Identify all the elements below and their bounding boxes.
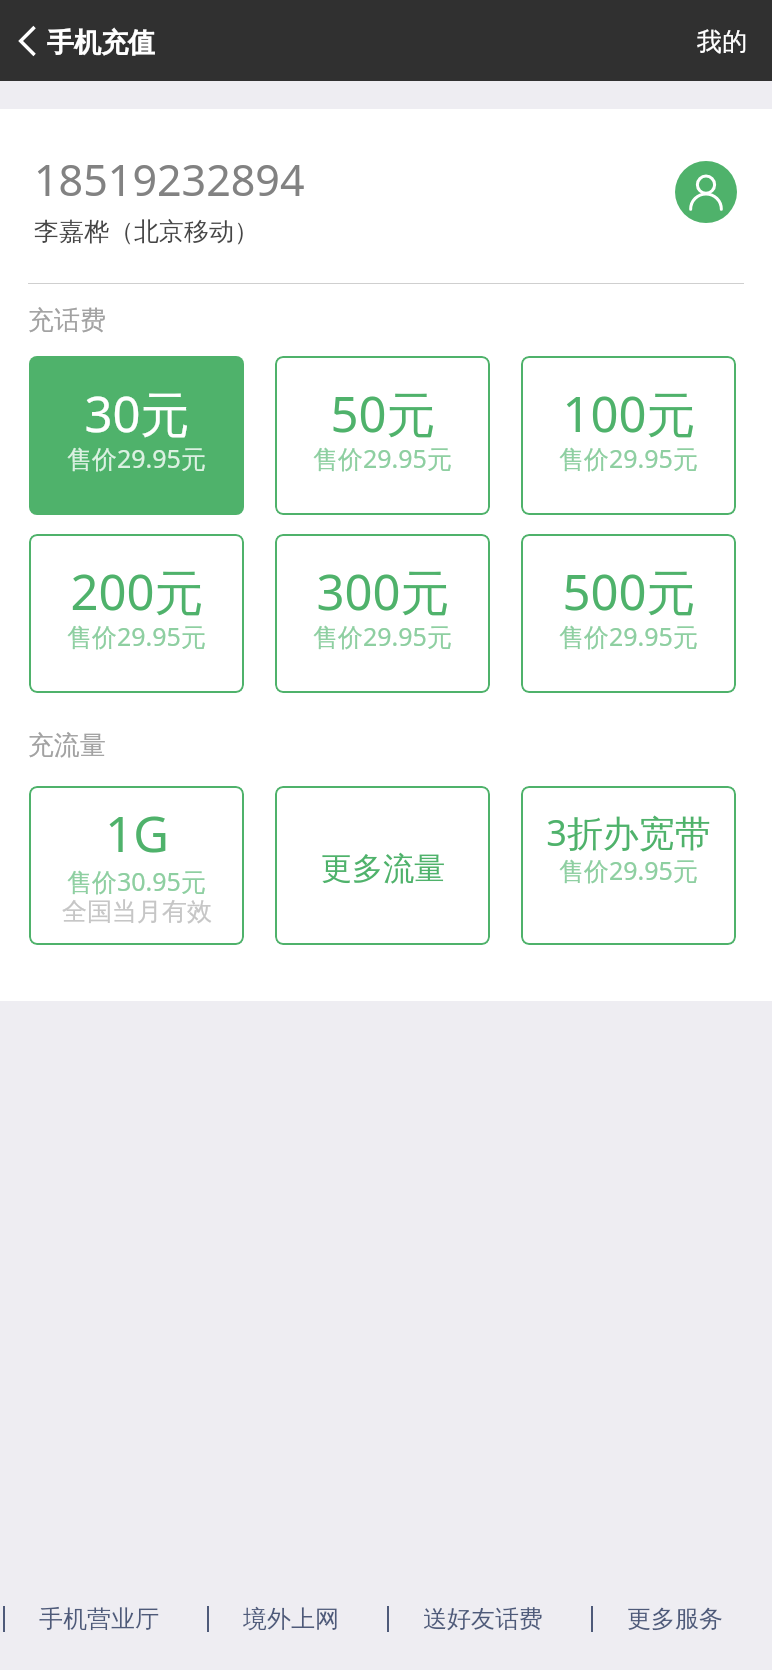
staticText: 境外上网: [243, 1604, 339, 1634]
button[interactable]: 手机营业厅: [3, 1567, 159, 1670]
button[interactable]: 更多服务: [591, 1567, 723, 1670]
staticText: 3折办宽带: [546, 808, 711, 857]
staticText: 1G: [105, 800, 169, 867]
button[interactable]: 200元: [29, 534, 244, 693]
staticText: 售价29.95元: [313, 441, 452, 475]
button[interactable]: 500元: [521, 534, 736, 693]
staticText: 我的: [697, 26, 747, 57]
staticText: 手机充值: [47, 26, 155, 60]
button[interactable]: 300元: [275, 534, 490, 693]
button[interactable]: Account: [675, 161, 737, 223]
staticText: 30元: [84, 380, 190, 447]
staticText: 送好友话费: [423, 1604, 543, 1634]
button[interactable]: 更多流量: [275, 786, 490, 945]
button[interactable]: 境外上网: [207, 1567, 339, 1670]
staticText: 300元: [316, 558, 450, 625]
staticText: 售价29.95元: [559, 853, 698, 887]
staticText: 售价29.95元: [559, 619, 698, 653]
staticText: 售价29.95元: [67, 441, 206, 475]
staticText: 全国当月有效: [62, 896, 212, 927]
staticText: 50元: [330, 380, 436, 447]
staticText: 李嘉桦（北京移动）: [34, 216, 259, 247]
button[interactable]: 1G: [29, 786, 244, 945]
button[interactable]: 100元: [521, 356, 736, 515]
staticText: 100元: [562, 380, 696, 447]
staticText: 充流量: [28, 729, 106, 762]
staticText: 更多服务: [627, 1604, 723, 1634]
button[interactable]: 我的: [669, 11, 772, 70]
staticText: 500元: [562, 558, 696, 625]
staticText: 充话费: [28, 304, 106, 337]
staticText: 售价29.95元: [313, 619, 452, 653]
staticText: 18519232894: [34, 150, 305, 209]
staticText: 200元: [70, 558, 204, 625]
staticText: 售价29.95元: [67, 619, 206, 653]
staticText: 售价30.95元: [67, 864, 206, 898]
button[interactable]: 送好友话费: [387, 1567, 543, 1670]
button[interactable]: Back: [4, 18, 50, 64]
staticText: 手机营业厅: [39, 1604, 159, 1634]
staticText: 售价29.95元: [559, 441, 698, 475]
button[interactable]: 50元: [275, 356, 490, 515]
button[interactable]: 3折办宽带: [521, 786, 736, 945]
staticText: 更多流量: [321, 849, 445, 888]
button[interactable]: 30元: [29, 356, 244, 515]
